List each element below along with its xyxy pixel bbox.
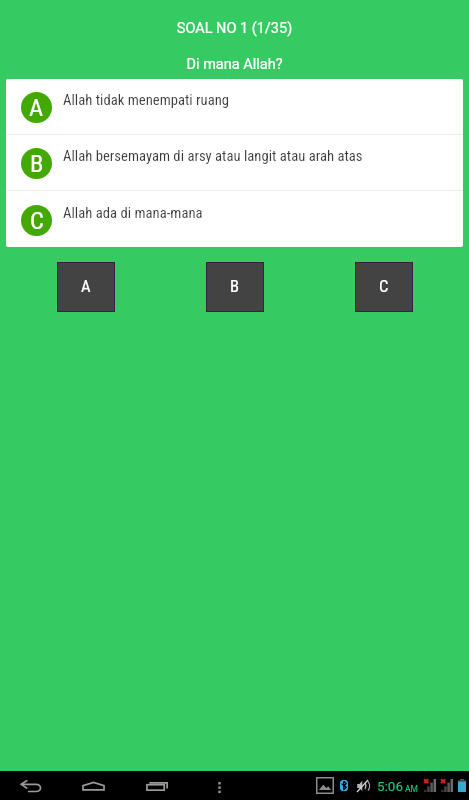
- button[interactable]: A: [58, 263, 114, 311]
- button[interactable]: C: [6, 191, 463, 247]
- staticText: C: [379, 277, 389, 296]
- staticText: SOAL NO 1 (1/35): [0, 20, 469, 37]
- staticText: C: [30, 206, 44, 235]
- button[interactable]: B: [207, 263, 263, 311]
- staticText: A: [81, 277, 91, 296]
- staticText: 5:06: [377, 778, 404, 794]
- staticText: B: [230, 277, 240, 296]
- button[interactable]: B: [6, 135, 463, 191]
- staticText: AM: [405, 784, 418, 794]
- staticText: Di mana Allah?: [0, 56, 469, 73]
- button[interactable]: Recent apps: [146, 778, 170, 794]
- staticText: B: [30, 149, 44, 178]
- staticText: Allah ada di mana-mana: [63, 204, 203, 221]
- staticText: Allah bersemayam di arsy atau langit ata…: [63, 147, 363, 164]
- staticText: A: [29, 93, 44, 122]
- staticText: Allah tidak menempati ruang: [63, 91, 230, 108]
- button[interactable]: Back: [20, 778, 44, 794]
- button[interactable]: A: [6, 79, 463, 135]
- button[interactable]: C: [356, 263, 412, 311]
- button[interactable]: More options: [213, 778, 226, 794]
- button[interactable]: Home: [81, 778, 106, 794]
